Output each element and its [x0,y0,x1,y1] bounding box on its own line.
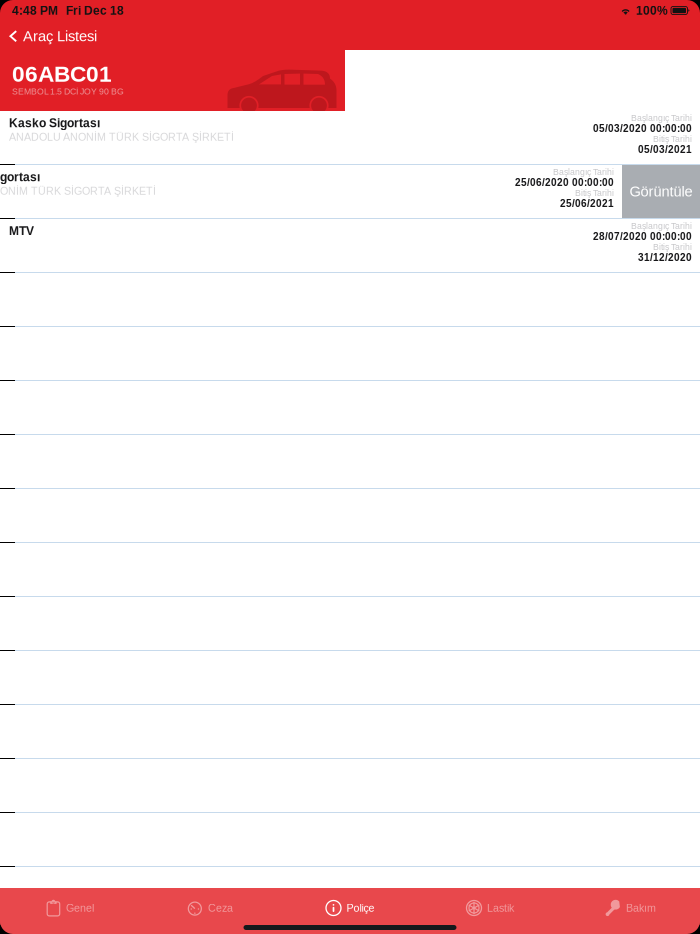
button[interactable]: Poliçe [280,891,420,925]
staticText: Yeşil Kart Sigortası [0,170,40,184]
staticText: Bakım [626,902,656,914]
button[interactable]: Görüntüle [622,165,700,218]
staticText: Bitiş Tarihi [653,134,692,144]
staticText: Başlangıç Tarihi [631,113,692,123]
staticText: MTV [9,224,34,238]
staticText: Bitiş Tarihi [653,242,692,252]
staticText: Kasko Sigortası [9,116,100,130]
staticText: ANADOLU ANONİM TÜRK SİGORTA ŞİRKETİ [0,185,156,197]
staticText: 25/06/2021 [560,198,614,209]
staticText: Başlangıç Tarihi [553,167,614,177]
staticText: 06ABC01 [12,61,112,87]
staticText: SEMBOL 1.5 DCİ JOY 90 BG [12,87,124,96]
staticText: 28/07/2020 00:00:00 [593,231,692,242]
staticText: Poliçe [346,902,374,914]
staticText: Genel [66,902,94,914]
button[interactable]: Bakım [560,891,700,925]
staticText: 100% [636,4,668,17]
staticText: Lastik [487,902,514,914]
staticText: 4:48 PM [12,4,58,17]
button[interactable]: Araç Listesi [0,22,96,50]
button[interactable]: Genel [0,891,140,925]
button[interactable]: Ceza [140,891,280,925]
staticText: Başlangıç Tarihi [631,221,692,231]
staticText: Fri Dec 18 [66,4,124,17]
staticText: 05/03/2021 [638,144,692,155]
staticText: 31/12/2020 [638,252,692,263]
staticText: Araç Listesi [23,28,97,44]
staticText: 25/06/2020 00:00:00 [515,177,614,188]
button[interactable]: Lastik [420,891,560,925]
staticText: ANADOLU ANONİM TÜRK SİGORTA ŞİRKETİ [9,131,234,143]
staticText: Ceza [208,902,233,914]
staticText: 05/03/2020 00:00:00 [593,123,692,134]
staticText: Görüntüle [629,183,692,200]
staticText: Bitiş Tarihi [575,188,614,198]
